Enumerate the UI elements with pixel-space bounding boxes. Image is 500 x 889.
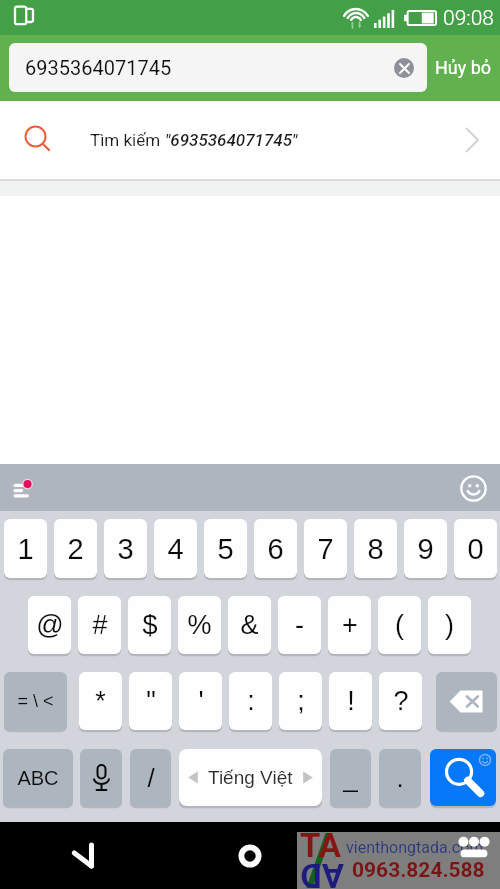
button[interactable]: Recent apps xyxy=(333,822,500,889)
staticText: 9 xyxy=(417,533,434,565)
staticText: " xyxy=(146,686,156,716)
button[interactable]: ! xyxy=(329,672,372,730)
staticText: 0963.824.588 xyxy=(352,858,485,883)
staticText: ! xyxy=(347,686,355,716)
staticText: 8 xyxy=(367,533,384,565)
staticText: % xyxy=(187,610,212,640)
button[interactable]: 1 xyxy=(4,519,47,578)
staticText: * xyxy=(95,686,106,716)
button[interactable]: Emoji xyxy=(452,467,494,509)
button[interactable]: 0 xyxy=(454,519,497,578)
staticText: AD xyxy=(300,856,344,889)
button[interactable]: @ xyxy=(28,596,71,654)
button[interactable]: Keyboard options xyxy=(4,466,48,510)
button[interactable]: Search xyxy=(0,101,500,179)
button[interactable]: _ xyxy=(330,749,371,806)
button[interactable]: = \ < xyxy=(4,672,67,730)
staticText: 6935364071745 xyxy=(25,56,172,79)
staticText: "6935364071745" xyxy=(165,130,298,150)
staticText: vienthongtada.com xyxy=(346,838,484,857)
button[interactable]: Backspace xyxy=(436,672,497,730)
button[interactable]: 7 xyxy=(304,519,347,578)
staticText: 0 xyxy=(467,533,484,565)
staticText: ' xyxy=(198,686,204,716)
button[interactable]: & xyxy=(228,596,271,654)
staticText: Hủy bỏ xyxy=(435,57,492,78)
staticText: ABC xyxy=(17,767,59,789)
staticText: 7 xyxy=(317,533,334,565)
button[interactable]: ? xyxy=(379,672,422,730)
staticText: 2 xyxy=(67,533,84,565)
staticText: - xyxy=(295,610,304,640)
button[interactable]: Voice input xyxy=(80,749,122,806)
button[interactable]: ( xyxy=(378,596,421,654)
button[interactable]: ABC xyxy=(3,749,73,806)
button[interactable]: . xyxy=(379,749,421,806)
staticText: # xyxy=(92,610,108,640)
staticText: 1 xyxy=(17,533,34,565)
button[interactable]: 6 xyxy=(254,519,297,578)
button[interactable]: Home xyxy=(166,822,333,889)
button[interactable]: ) xyxy=(428,596,471,654)
button[interactable]: Multi window xyxy=(9,5,35,30)
button[interactable]: " xyxy=(129,672,172,730)
button[interactable]: - xyxy=(278,596,321,654)
staticText: 3 xyxy=(117,533,134,565)
button[interactable]: Back xyxy=(0,822,166,889)
button[interactable]: 9 xyxy=(404,519,447,578)
button[interactable]: ' xyxy=(179,672,222,730)
button[interactable]: Clear text xyxy=(394,58,414,78)
button[interactable]: Hủy bỏ xyxy=(427,43,500,92)
staticText: TA xyxy=(300,826,341,865)
staticText: Tiếng Việt xyxy=(208,767,293,788)
button[interactable]: 6935364071745 xyxy=(9,43,427,92)
staticText: : xyxy=(247,686,255,716)
staticText: _ xyxy=(343,763,358,792)
button[interactable]: ; xyxy=(279,672,322,730)
button[interactable]: : xyxy=(229,672,272,730)
staticText: 09:08 xyxy=(443,6,495,31)
button[interactable]: % xyxy=(178,596,221,654)
staticText: = \ < xyxy=(17,691,54,711)
button[interactable]: * xyxy=(79,672,122,730)
staticText: $ xyxy=(142,610,158,640)
staticText: & xyxy=(240,610,259,640)
staticText: ( xyxy=(395,610,404,640)
staticText: . xyxy=(396,763,404,792)
staticText: + xyxy=(342,610,358,640)
button[interactable]: + xyxy=(328,596,371,654)
button[interactable]: # xyxy=(78,596,121,654)
staticText: ? xyxy=(393,686,409,716)
button[interactable]: 3 xyxy=(104,519,147,578)
staticText: Tìm kiếm xyxy=(90,130,165,150)
button[interactable]: / xyxy=(130,749,171,806)
button[interactable]: $ xyxy=(128,596,171,654)
button[interactable]: 4 xyxy=(154,519,197,578)
button[interactable]: 5 xyxy=(204,519,247,578)
staticText: 6 xyxy=(267,533,284,565)
button[interactable]: 8 xyxy=(354,519,397,578)
staticText: / xyxy=(147,763,155,792)
staticText: 5 xyxy=(217,533,234,565)
button[interactable]: Search xyxy=(430,749,496,806)
button[interactable]: Search xyxy=(24,125,54,155)
staticText: @ xyxy=(36,610,64,640)
button[interactable]: Tiếng Việt xyxy=(179,749,322,806)
staticText: ; xyxy=(297,686,305,716)
staticText: 4 xyxy=(167,533,184,565)
button[interactable]: 2 xyxy=(54,519,97,578)
staticText: ) xyxy=(445,610,454,640)
button[interactable]: Open xyxy=(450,101,496,179)
